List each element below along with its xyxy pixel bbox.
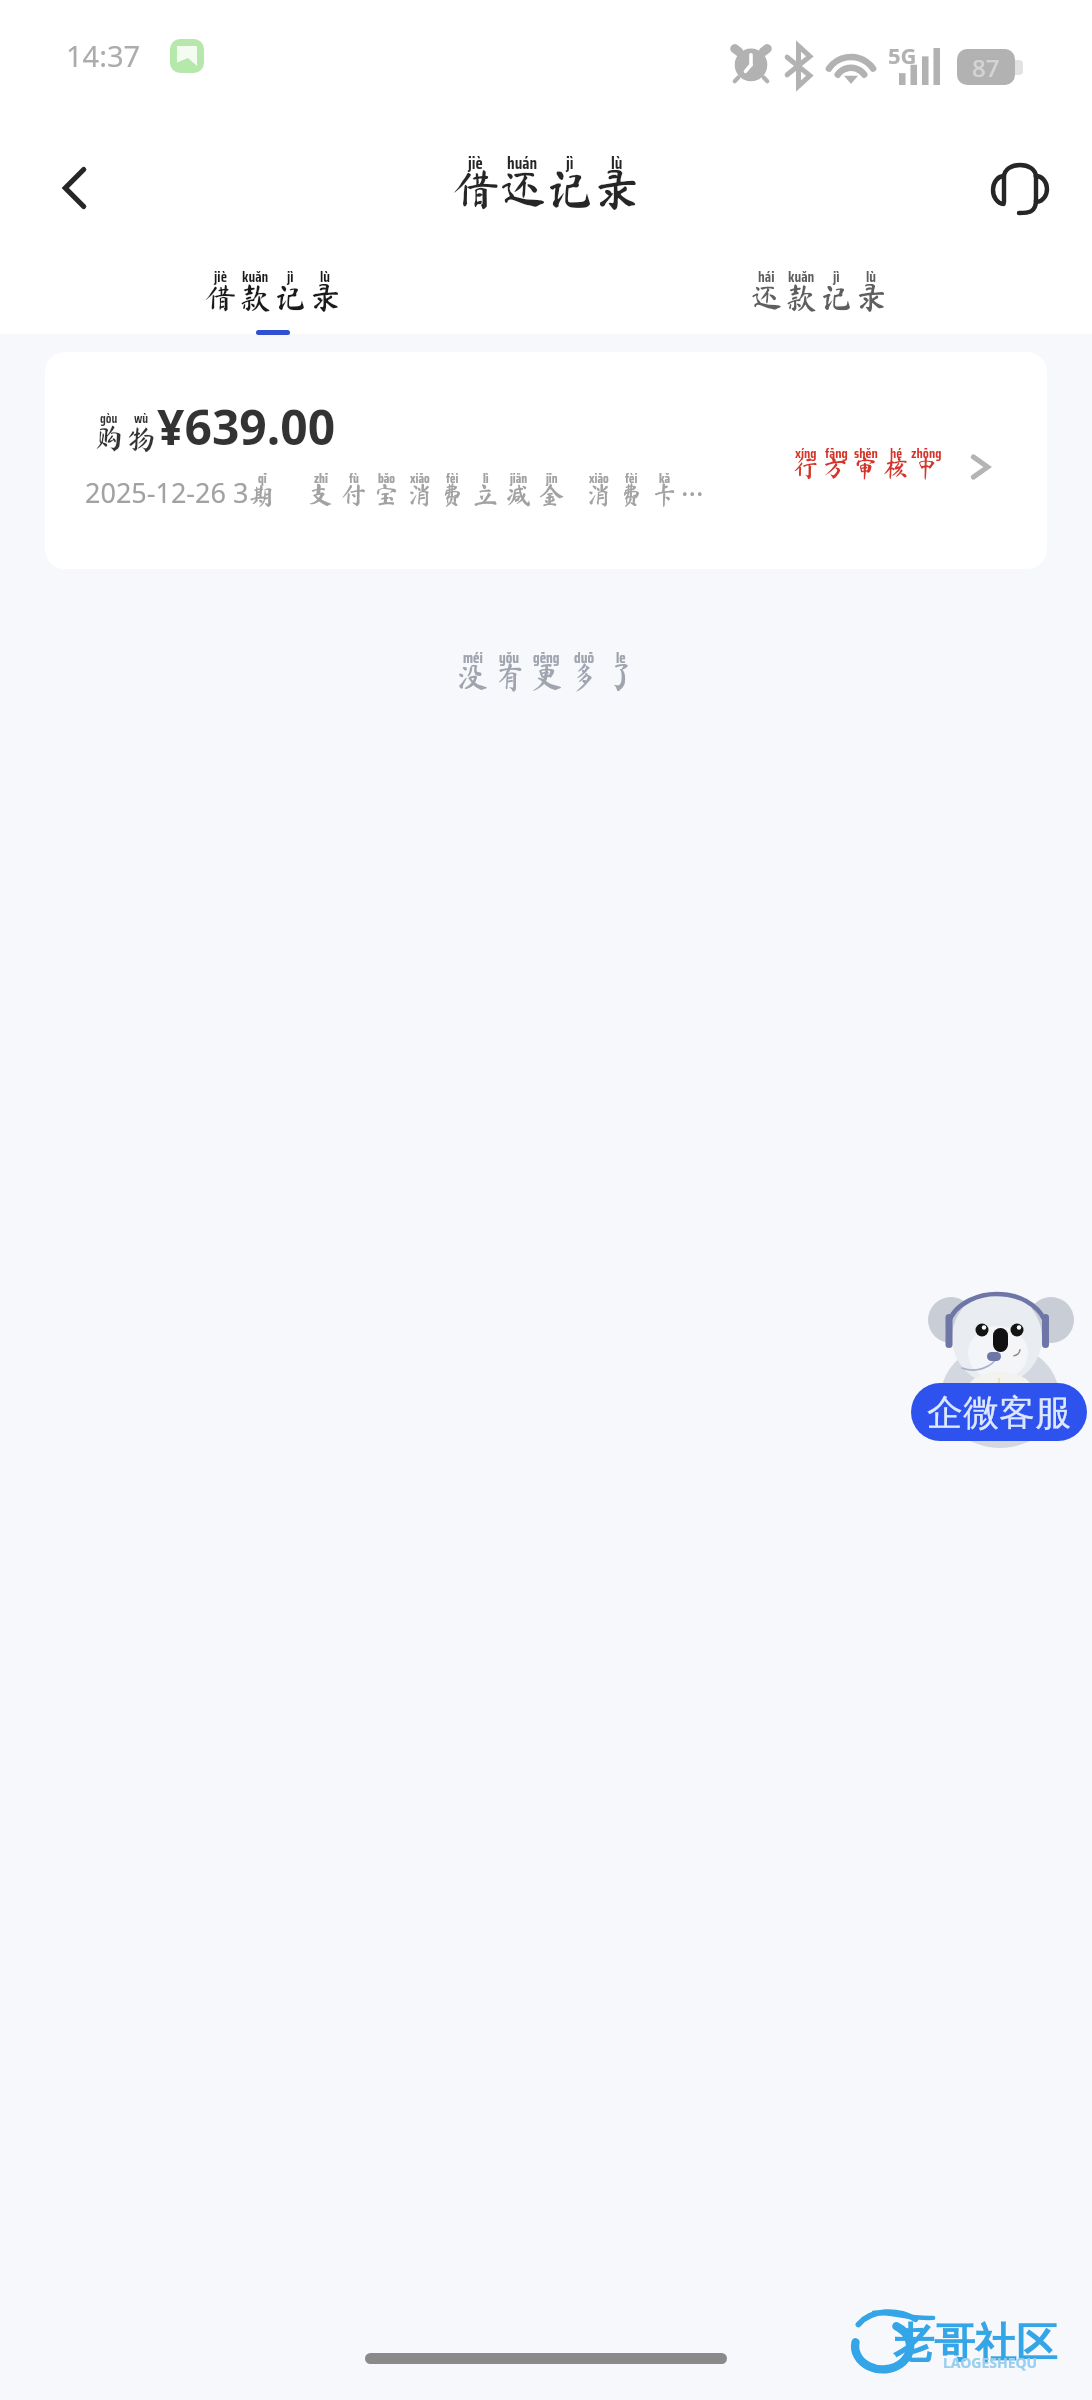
staticText: gòu bbox=[100, 408, 118, 428]
staticText: 记 bbox=[821, 282, 852, 313]
staticText: duō bbox=[574, 646, 594, 670]
staticText: 付 bbox=[341, 482, 367, 507]
staticText: 宝 bbox=[374, 482, 400, 507]
button[interactable]: jiè bbox=[0, 250, 546, 334]
staticText: 录 bbox=[310, 282, 341, 313]
staticText: 支 bbox=[308, 482, 334, 507]
staticText: 企微客服 bbox=[927, 1390, 1071, 1435]
button[interactable]: gòu bbox=[45, 352, 1047, 569]
staticText: le bbox=[616, 646, 626, 670]
staticText: ¥639.00 bbox=[157, 394, 336, 459]
staticText: 中 bbox=[914, 455, 940, 480]
staticText: lù bbox=[611, 150, 623, 177]
staticText: 立 bbox=[473, 482, 499, 507]
staticText: 消 bbox=[407, 482, 433, 507]
staticText: 录 bbox=[856, 282, 887, 313]
staticText: 多 bbox=[569, 662, 599, 692]
staticText: huán bbox=[507, 150, 538, 177]
staticText: jiè bbox=[468, 150, 483, 177]
staticText: xiāo bbox=[589, 468, 609, 488]
staticText: jì bbox=[833, 265, 840, 289]
staticText: qī bbox=[258, 468, 267, 488]
staticText: fèi bbox=[446, 468, 459, 488]
staticText: 购 bbox=[94, 423, 124, 452]
staticText: 物 bbox=[126, 423, 156, 452]
staticText: 记 bbox=[547, 166, 593, 212]
staticText: yǒu bbox=[499, 646, 520, 670]
staticText: fù bbox=[349, 468, 359, 488]
staticText: kuǎn bbox=[788, 265, 815, 289]
staticText: 87 bbox=[972, 51, 1000, 84]
button[interactable]: Customer service bbox=[960, 127, 1079, 246]
button[interactable]: 企微客服 bbox=[911, 1292, 1087, 1441]
staticText: jiè bbox=[214, 265, 228, 289]
staticText: ··· bbox=[681, 474, 704, 512]
staticText: méi bbox=[463, 646, 483, 670]
staticText: fāng bbox=[825, 442, 848, 464]
staticText: jiǎn bbox=[510, 468, 528, 488]
staticText: 还 bbox=[500, 166, 546, 212]
staticText: 老哥社区 bbox=[893, 2318, 1057, 2370]
staticText: bǎo bbox=[378, 468, 396, 488]
staticText: 2025-12-26 3 bbox=[85, 474, 249, 511]
staticText: 有 bbox=[495, 662, 525, 692]
staticText: 费 bbox=[619, 482, 645, 507]
staticText: fèi bbox=[625, 468, 638, 488]
staticText: 录 bbox=[594, 166, 640, 212]
staticText: 费 bbox=[440, 482, 466, 507]
staticText: 借 bbox=[453, 166, 499, 212]
staticText: wù bbox=[134, 408, 149, 428]
staticText: lì bbox=[483, 468, 489, 488]
staticText: jì bbox=[566, 150, 574, 177]
staticText: gēng bbox=[533, 646, 560, 670]
staticText: 还 bbox=[751, 282, 782, 313]
staticText: hé bbox=[890, 442, 903, 464]
staticText: 没 bbox=[458, 662, 488, 692]
staticText: 行 bbox=[793, 455, 819, 480]
staticText: kuǎn bbox=[242, 265, 269, 289]
staticText: 更 bbox=[532, 662, 562, 692]
button[interactable]: hái bbox=[546, 250, 1092, 334]
staticText: 金 bbox=[539, 482, 565, 507]
button[interactable]: Back bbox=[15, 128, 134, 247]
staticText: 款 bbox=[786, 282, 817, 313]
staticText: LAOGESHEQU bbox=[943, 2353, 1038, 2372]
staticText: 消 bbox=[586, 482, 612, 507]
staticText: 记 bbox=[275, 282, 306, 313]
staticText: jīn bbox=[546, 468, 558, 488]
staticText: 审 bbox=[853, 455, 879, 480]
staticText: hái bbox=[758, 265, 775, 289]
staticText: jì bbox=[287, 265, 294, 289]
staticText: 14:37 bbox=[66, 36, 141, 75]
staticText: 5G bbox=[888, 40, 917, 70]
staticText: zhī bbox=[314, 468, 328, 488]
staticText: 方 bbox=[823, 455, 849, 480]
staticText: kǎ bbox=[659, 468, 671, 488]
staticText: xiāo bbox=[410, 468, 430, 488]
staticText: 减 bbox=[506, 482, 532, 507]
staticText: 借 bbox=[205, 282, 236, 313]
staticText: shěn bbox=[854, 442, 878, 464]
staticText: 款 bbox=[240, 282, 271, 313]
staticText: lù bbox=[320, 265, 331, 289]
staticText: 核 bbox=[883, 455, 909, 480]
staticText: 期 bbox=[249, 482, 275, 507]
staticText: xíng bbox=[795, 442, 817, 464]
staticText: 了 bbox=[606, 662, 636, 692]
staticText: zhōng bbox=[911, 442, 942, 464]
staticText: 卡 bbox=[652, 482, 678, 507]
staticText: lù bbox=[866, 265, 877, 289]
